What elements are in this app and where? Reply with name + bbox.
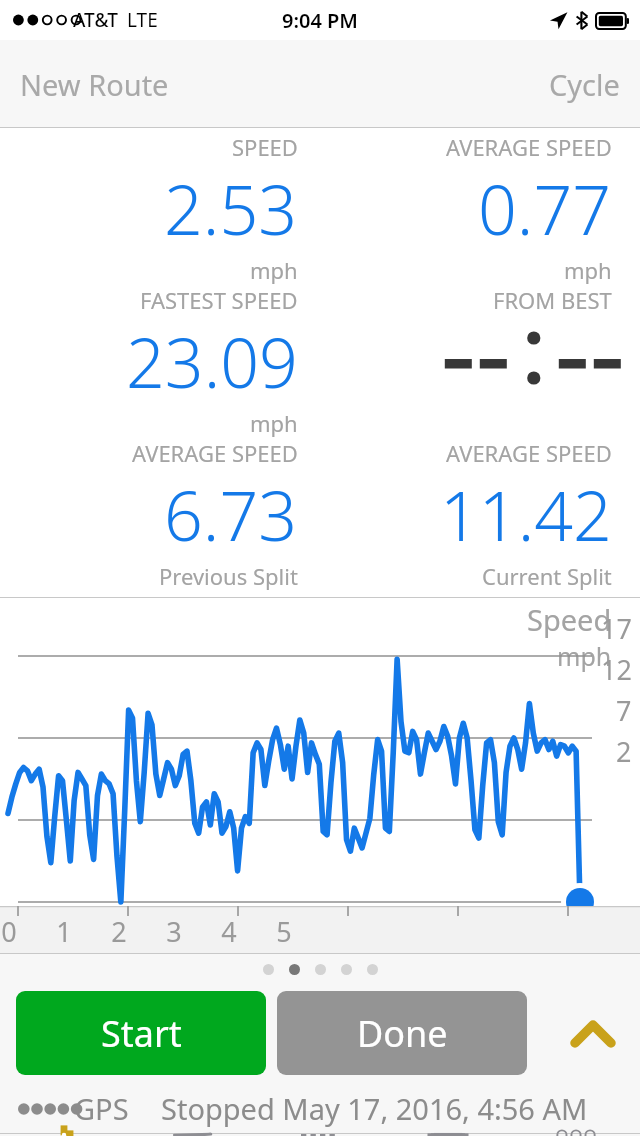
staticText: Cycle [549,65,620,104]
staticText: 1 [56,913,72,950]
staticText: FROM BEST [493,285,612,315]
staticText: 9:04 PM [282,7,358,34]
staticText: LTE [127,7,158,33]
staticText: mph [250,408,298,438]
staticText: 11.42 [440,468,612,561]
staticText: FASTEST SPEED [140,285,298,315]
staticText: AT&T [73,7,118,33]
button[interactable]: Start [16,991,266,1075]
button[interactable]: New Route [0,49,189,120]
staticText: 0.77 [478,162,612,255]
button[interactable]: History [384,1134,512,1136]
staticText: Start [101,1009,182,1058]
staticText: AVERAGE SPEED [446,438,612,468]
staticText: AVERAGE SPEED [132,438,298,468]
button[interactable]: Stopwatch [0,1134,128,1136]
button[interactable]: AVERAGE SPEED [320,132,612,285]
staticText: 4 [221,913,237,950]
staticText: 2 [616,733,632,770]
staticText: mph [564,255,612,285]
staticText: GPS [74,1089,129,1128]
staticText: New Route [20,65,169,104]
staticText: Current Split [482,561,612,591]
button[interactable]: AVERAGE SPEED [320,438,612,591]
staticText: 17 [601,610,632,647]
staticText: mph [557,639,612,673]
staticText: AVERAGE SPEED [446,132,612,162]
staticText: mph [250,255,298,285]
button[interactable]: Done [277,991,527,1075]
button[interactable]: SPEED [0,132,298,285]
staticText: 23.09 [126,315,298,408]
button[interactable]: Expand controls [562,1002,624,1064]
staticText: Stopped May 17, 2016, 4:56 AM [161,1089,588,1128]
staticText: 2 [111,913,127,950]
staticText: 0 [1,913,17,950]
button[interactable]: AVERAGE SPEED [0,438,298,591]
staticText: Previous Split [159,561,298,591]
button[interactable]: Cycle [529,49,640,120]
staticText: 5 [276,913,292,950]
staticText: 2.53 [164,162,298,255]
staticText: Done [357,1009,448,1058]
staticText: 12 [601,651,632,688]
staticText: 6.73 [164,468,298,561]
button[interactable]: More [512,1134,640,1136]
staticText: SPEED [232,132,298,162]
button[interactable]: Calendar [256,1134,384,1136]
staticText: Speed [527,600,612,639]
button[interactable]: FROM BEST [320,285,612,424]
button[interactable]: Map [128,1134,256,1136]
button[interactable]: FASTEST SPEED [0,285,298,438]
staticText: 3 [166,913,182,950]
staticText: 7 [616,692,632,729]
